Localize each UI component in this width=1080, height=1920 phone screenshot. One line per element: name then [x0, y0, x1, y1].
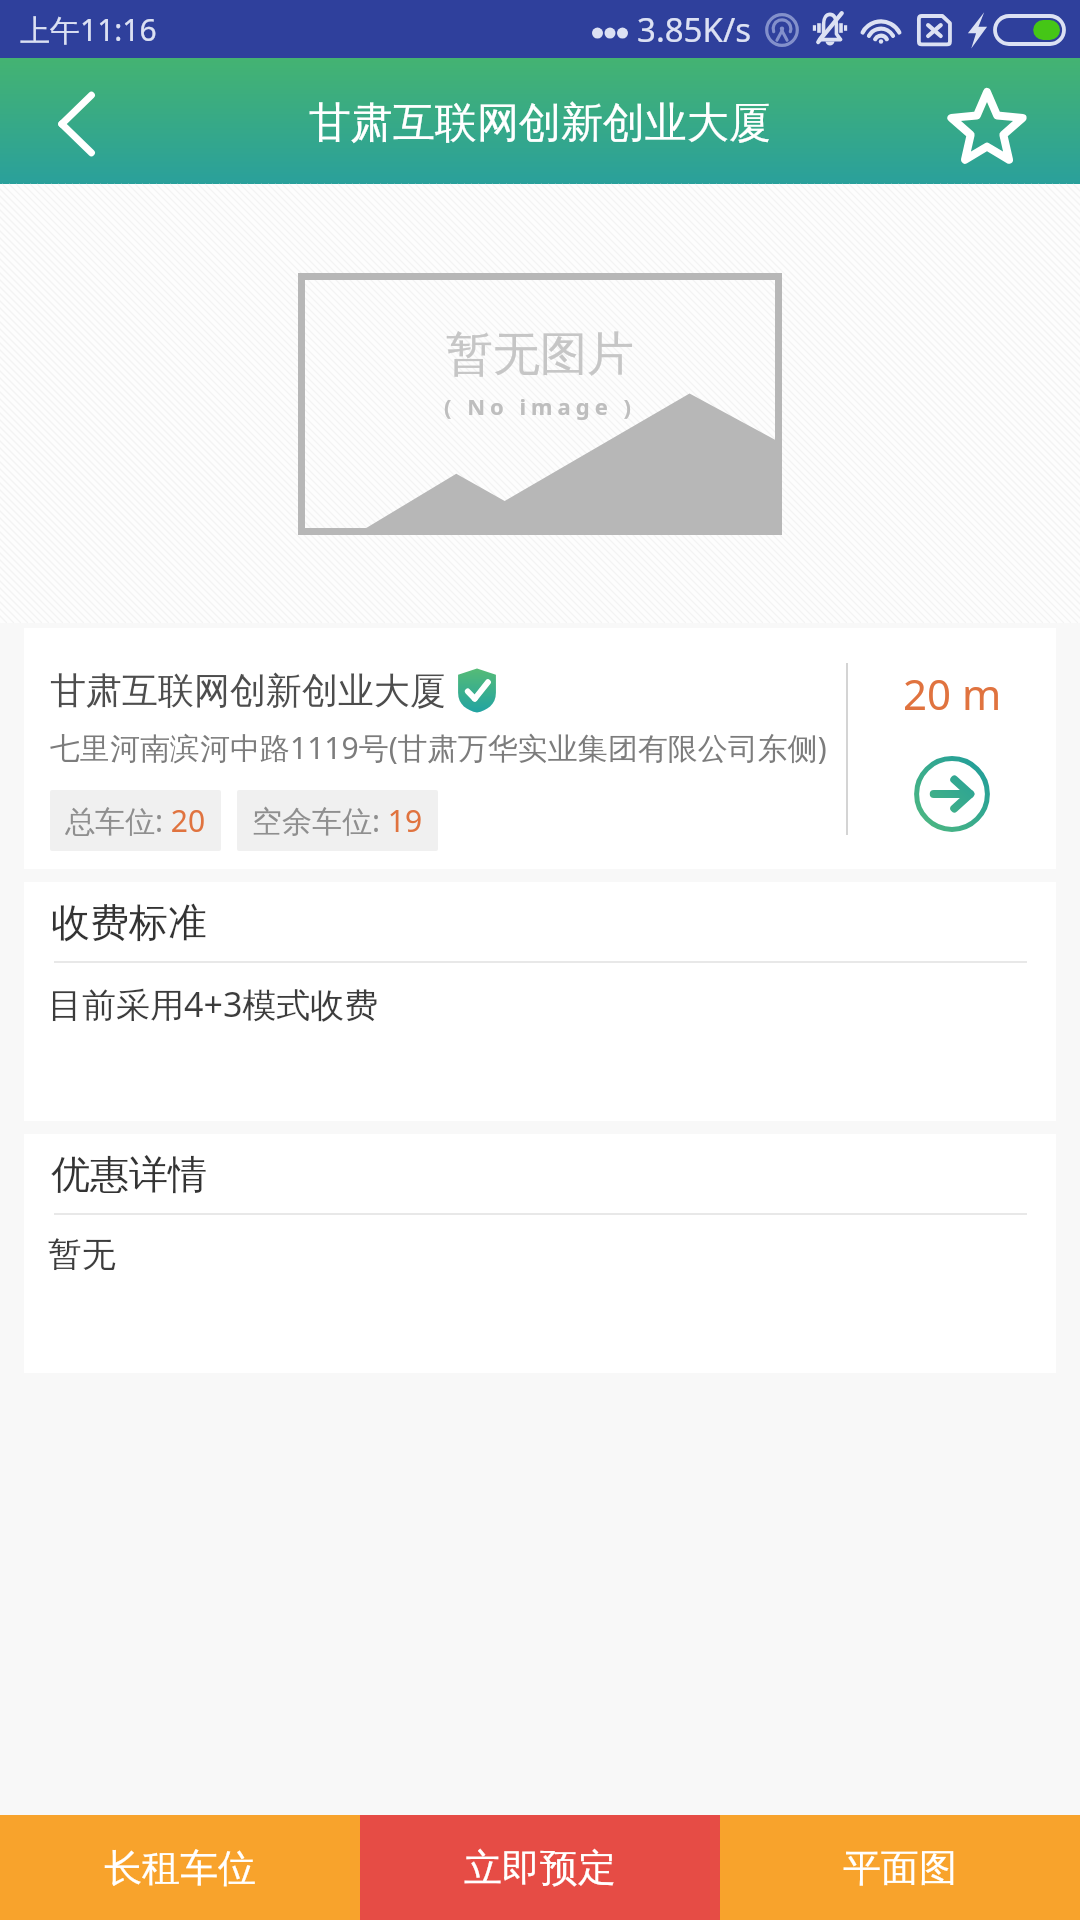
- button[interactable]: 平面图: [720, 1815, 1080, 1920]
- button[interactable]: Navigate: [848, 628, 1056, 869]
- button[interactable]: Favorite: [910, 58, 1080, 184]
- staticText: 立即预定: [464, 1844, 616, 1892]
- staticText: 3.85K/s: [637, 7, 751, 52]
- button[interactable]: Back: [0, 58, 148, 184]
- staticText: 七里河南滨河中路1119号(甘肃万华实业集团有限公司东侧): [50, 727, 827, 768]
- staticText: 20 m: [903, 665, 1002, 722]
- staticText: 目前采用4+3模式收费: [48, 981, 379, 1027]
- staticText: 收费标准: [51, 898, 207, 947]
- staticText: 甘肃互联网创新创业大厦: [50, 668, 446, 713]
- staticText: 甘肃互联网创新创业大厦: [309, 97, 771, 150]
- staticText: 总车位: 20: [65, 800, 206, 841]
- staticText: 暂无图片: [446, 325, 634, 384]
- staticText: 空余车位: 19: [252, 800, 423, 841]
- button[interactable]: 甘肃互联网创新创业大厦: [24, 628, 1056, 869]
- button[interactable]: 立即预定: [360, 1815, 720, 1920]
- staticText: ( No image ): [444, 391, 636, 421]
- staticText: 暂无: [48, 1233, 116, 1276]
- staticText: 上午11:16: [20, 9, 157, 50]
- button[interactable]: 长租车位: [0, 1815, 360, 1920]
- staticText: 优惠详情: [51, 1150, 207, 1199]
- staticText: 长租车位: [104, 1844, 256, 1892]
- staticText: 平面图: [843, 1844, 957, 1892]
